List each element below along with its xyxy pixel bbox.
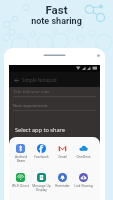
- staticText: Title: Edit your note: [13, 89, 50, 94]
- staticText: Gmail: [58, 155, 67, 159]
- button[interactable]: Link Sharing: [73, 173, 94, 188]
- staticText: Fast: [0, 3, 113, 16]
- staticText: Simple Notepad: [22, 77, 57, 83]
- button[interactable]: Android Beam: [10, 144, 31, 163]
- staticText: Select app to share: [15, 126, 65, 134]
- button[interactable]: Message Up Display: [31, 173, 52, 192]
- staticText: Link Sharing: [74, 184, 93, 188]
- staticText: Android Beam: [15, 155, 27, 163]
- staticText: Note appointment: [13, 103, 48, 108]
- staticText: Wi-Fi Direct: [12, 184, 29, 188]
- button[interactable]: Back: [12, 76, 20, 84]
- button[interactable]: Wi-Fi Direct: [10, 173, 31, 188]
- button[interactable]: Gmail: [52, 144, 73, 159]
- staticText: Facebook: [34, 155, 49, 159]
- button[interactable]: Reminder: [52, 173, 73, 188]
- button[interactable]: Facebook: [31, 144, 52, 159]
- staticText: note sharing: [0, 16, 113, 27]
- staticText: Reminder: [55, 184, 70, 188]
- button[interactable]: OneDrive: [73, 144, 94, 159]
- staticText: Message Up Display: [32, 184, 51, 192]
- staticText: OneDrive: [76, 155, 91, 159]
